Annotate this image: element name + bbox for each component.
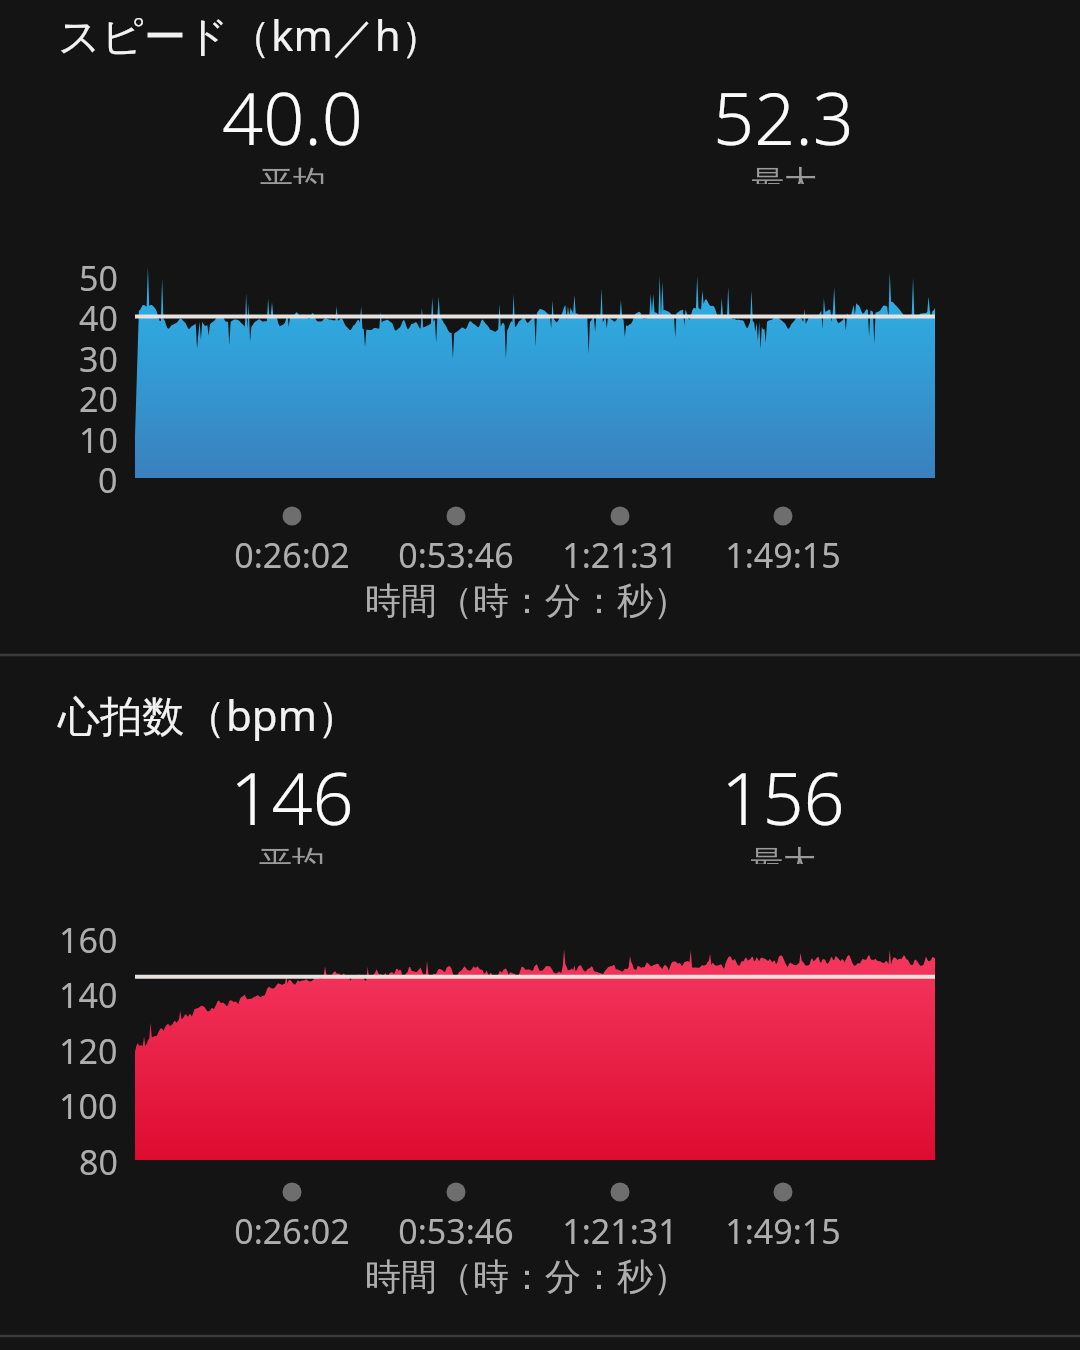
staticText: 0:53:46: [398, 1208, 514, 1250]
staticText: 30: [79, 336, 118, 378]
staticText: 平均: [259, 842, 325, 864]
staticText: 40.0: [222, 68, 363, 166]
button[interactable]: 52.3: [633, 68, 933, 188]
staticText: 40: [79, 295, 118, 337]
staticText: 10: [79, 417, 118, 459]
staticText: 1:49:15: [725, 1208, 841, 1250]
button[interactable]: 156: [633, 748, 933, 868]
staticText: 1:21:31: [562, 1208, 678, 1250]
staticText: 50: [79, 255, 118, 297]
staticText: 146: [230, 748, 354, 846]
staticText: 心拍数（bpm）: [58, 686, 359, 743]
staticText: 100: [59, 1083, 118, 1125]
staticText: 1:21:31: [562, 532, 678, 574]
staticText: 120: [59, 1028, 118, 1070]
staticText: 時間（時：分：秒）: [365, 1254, 689, 1299]
staticText: 最大: [751, 162, 817, 184]
staticText: 80: [79, 1139, 118, 1181]
staticText: 0:26:02: [234, 1208, 350, 1250]
staticText: 0:53:46: [398, 532, 514, 574]
staticText: 0:26:02: [234, 532, 350, 574]
staticText: 1:49:15: [725, 532, 841, 574]
staticText: スピード（km／h）: [58, 6, 443, 63]
button[interactable]: 40.0: [142, 68, 442, 188]
staticText: 平均: [260, 162, 326, 184]
staticText: 156: [721, 748, 845, 846]
button[interactable]: Speed chart: [0, 0, 1080, 1350]
staticText: 時間（時：分：秒）: [365, 578, 689, 623]
button[interactable]: 146: [142, 748, 442, 868]
staticText: 最大: [750, 842, 816, 864]
staticText: 140: [59, 972, 118, 1014]
staticText: 52.3: [713, 68, 854, 166]
staticText: 160: [59, 917, 118, 959]
staticText: 0: [98, 457, 118, 499]
staticText: 20: [79, 376, 118, 418]
